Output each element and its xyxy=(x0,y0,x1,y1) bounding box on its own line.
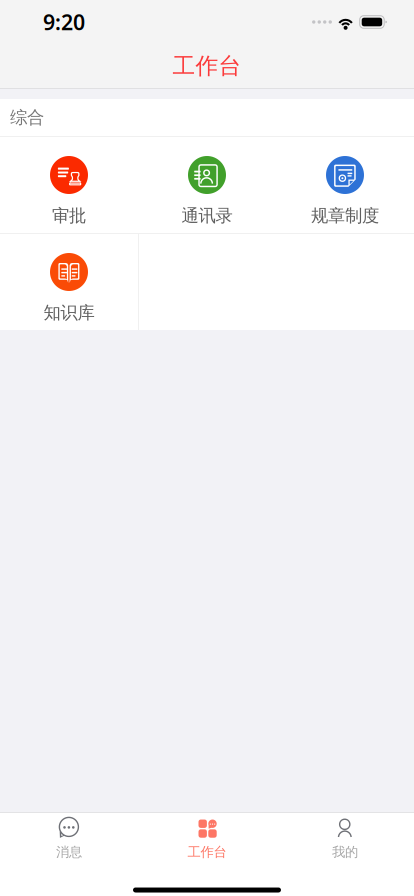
staticText: 审批 xyxy=(52,205,86,226)
button[interactable]: 消息 xyxy=(0,813,138,862)
button[interactable]: 通讯录 xyxy=(138,137,276,233)
staticText: 工作台 xyxy=(187,844,226,860)
staticText: 工作台 xyxy=(172,52,241,80)
staticText: 综合 xyxy=(10,107,44,128)
staticText: 消息 xyxy=(56,844,82,860)
staticText: 通讯录 xyxy=(181,205,232,226)
button[interactable]: 知识库 xyxy=(0,234,138,330)
button[interactable]: 工作台 xyxy=(138,813,276,862)
staticText: 我的 xyxy=(332,844,358,860)
staticText: 9:20 xyxy=(43,8,85,36)
staticText: 知识库 xyxy=(43,302,94,323)
button[interactable]: 审批 xyxy=(0,137,138,233)
button[interactable]: 规章制度 xyxy=(276,137,414,233)
staticText: 规章制度 xyxy=(311,205,379,226)
button[interactable]: 我的 xyxy=(276,813,414,862)
